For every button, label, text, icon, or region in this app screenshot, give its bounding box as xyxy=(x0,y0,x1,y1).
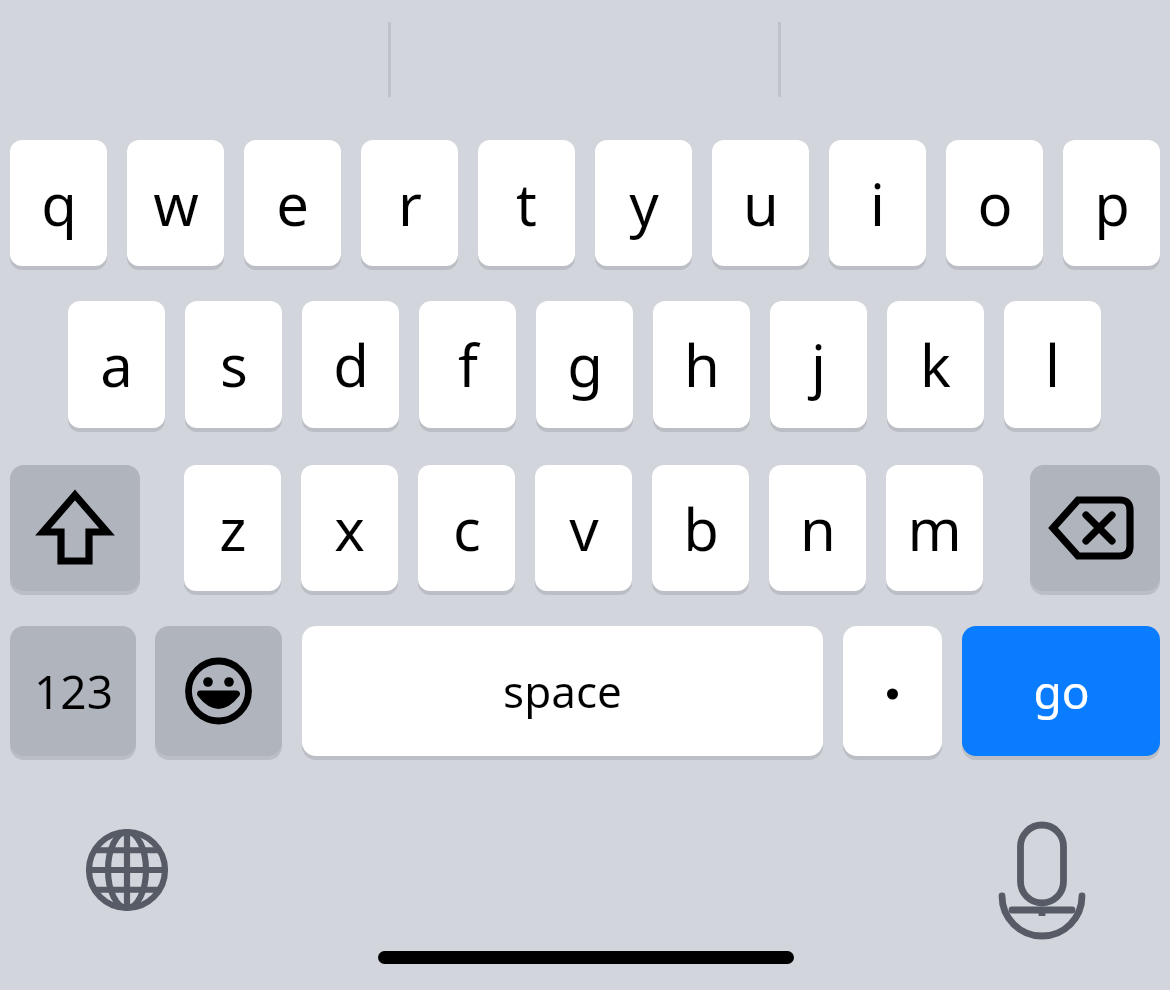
staticText: k xyxy=(920,325,951,404)
staticText: g xyxy=(567,325,603,404)
staticText: 123 xyxy=(34,660,113,723)
button[interactable]: p xyxy=(1063,140,1160,266)
staticText: j xyxy=(811,325,826,404)
button[interactable]: c xyxy=(418,465,515,591)
button[interactable]: l xyxy=(1004,301,1101,428)
button[interactable]: u xyxy=(712,140,809,266)
button[interactable] xyxy=(843,626,942,756)
staticText: v xyxy=(569,489,599,568)
staticText: n xyxy=(800,489,836,568)
button[interactable]: q xyxy=(10,140,107,266)
staticText: s xyxy=(220,325,248,404)
button[interactable]: v xyxy=(535,465,632,591)
staticText: i xyxy=(870,164,885,243)
button[interactable]: z xyxy=(184,465,281,591)
staticText: h xyxy=(684,325,720,404)
button[interactable]: y xyxy=(595,140,692,266)
button[interactable]: go xyxy=(962,626,1160,756)
staticText: b xyxy=(683,489,719,568)
button[interactable]: r xyxy=(361,140,458,266)
staticText: w xyxy=(153,164,199,243)
staticText: z xyxy=(219,489,247,568)
button[interactable]: x xyxy=(301,465,398,591)
staticText: q xyxy=(41,164,77,243)
staticText: f xyxy=(458,325,478,404)
staticText: space xyxy=(503,661,622,721)
staticText: c xyxy=(453,489,481,568)
button[interactable]: space xyxy=(302,626,823,756)
staticText: o xyxy=(977,164,1013,243)
button[interactable]: w xyxy=(127,140,224,266)
button[interactable]: k xyxy=(887,301,984,428)
button[interactable]: Backspace xyxy=(1030,465,1160,591)
button[interactable]: s xyxy=(185,301,282,428)
button[interactable]: Change keyboard language xyxy=(87,830,167,910)
button[interactable]: m xyxy=(886,465,983,591)
button[interactable]: f xyxy=(419,301,516,428)
button[interactable]: Shift xyxy=(10,465,140,591)
button[interactable]: 123 xyxy=(10,626,136,756)
button[interactable]: o xyxy=(946,140,1043,266)
button[interactable]: a xyxy=(68,301,165,428)
staticText: r xyxy=(398,164,422,243)
button[interactable]: Dictation xyxy=(1002,820,1082,918)
staticText: p xyxy=(1094,164,1130,243)
staticText: d xyxy=(333,325,369,404)
button[interactable]: g xyxy=(536,301,633,428)
staticText: e xyxy=(276,164,309,243)
staticText: a xyxy=(100,325,133,404)
staticText: x xyxy=(334,489,365,568)
button[interactable]: j xyxy=(770,301,867,428)
button[interactable]: h xyxy=(653,301,750,428)
button[interactable]: b xyxy=(652,465,749,591)
staticText: m xyxy=(907,489,962,568)
staticText: go xyxy=(1033,660,1090,723)
button[interactable]: e xyxy=(244,140,341,266)
button[interactable]: i xyxy=(829,140,926,266)
staticText: y xyxy=(629,164,659,243)
staticText: l xyxy=(1045,325,1060,404)
button[interactable]: d xyxy=(302,301,399,428)
button[interactable]: t xyxy=(478,140,575,266)
button[interactable]: Emoji keyboard xyxy=(155,626,282,756)
staticText: u xyxy=(743,164,779,243)
staticText: t xyxy=(516,164,537,243)
button[interactable]: n xyxy=(769,465,866,591)
